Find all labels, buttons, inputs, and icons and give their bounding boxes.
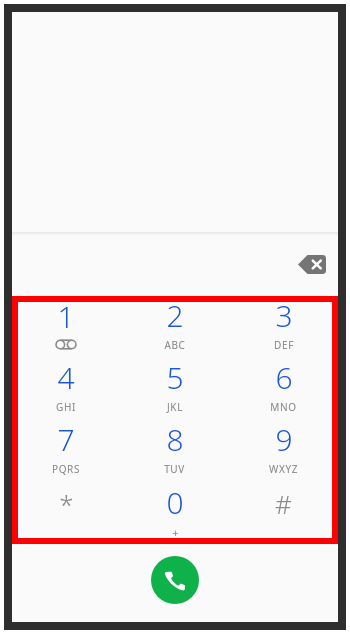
staticText: WXYZ	[269, 462, 298, 476]
staticText: 8	[166, 419, 184, 460]
button[interactable]: #	[229, 479, 338, 542]
staticText: 2	[166, 295, 184, 336]
button[interactable]: 9	[229, 416, 338, 479]
staticText: PQRS	[52, 462, 80, 476]
button[interactable]: 3	[229, 292, 338, 354]
staticText: 9	[275, 419, 293, 460]
staticText: 5	[166, 357, 184, 398]
staticText: JKL	[167, 400, 183, 414]
button[interactable]: 1	[12, 292, 120, 354]
staticText: 7	[57, 419, 75, 460]
staticText: 4	[57, 357, 75, 398]
button[interactable]: 7	[12, 416, 120, 479]
button[interactable]: Backspace	[292, 249, 332, 279]
button[interactable]: Call	[151, 556, 199, 604]
staticText: 0	[166, 482, 184, 523]
button[interactable]: 2	[120, 292, 229, 354]
staticText: 6	[275, 357, 293, 398]
button[interactable]: *	[12, 479, 120, 542]
staticText: TUV	[164, 462, 185, 476]
staticText: 1	[57, 296, 75, 337]
staticText: *	[59, 486, 74, 521]
staticText: GHI	[56, 400, 76, 414]
staticText: DEF	[274, 338, 294, 352]
button[interactable]: 8	[120, 416, 229, 479]
button[interactable]: 6	[229, 354, 338, 416]
staticText: MNO	[270, 400, 297, 414]
staticText: #	[275, 486, 292, 521]
button[interactable]: 4	[12, 354, 120, 416]
button[interactable]: 0	[120, 479, 229, 542]
staticText: +	[172, 525, 179, 540]
button[interactable]: 5	[120, 354, 229, 416]
staticText: ABC	[164, 338, 186, 352]
staticText: 3	[275, 295, 293, 336]
